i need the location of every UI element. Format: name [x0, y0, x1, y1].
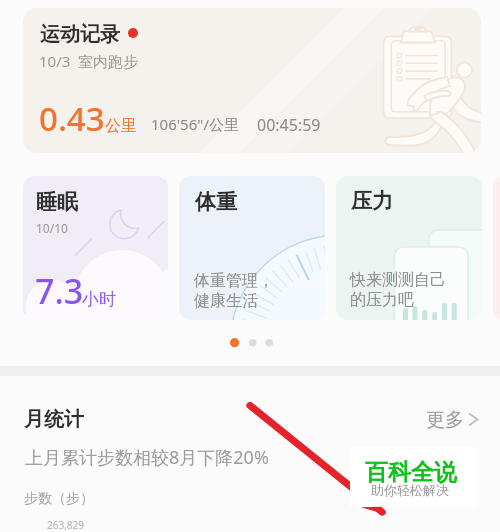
- staticText: 体重: [195, 189, 237, 215]
- staticText: 睡眠: [36, 189, 78, 215]
- staticText: 体重管理， 健康生活: [194, 271, 274, 311]
- staticText: 更多: [426, 408, 464, 432]
- staticText: 步数（步）: [24, 490, 94, 508]
- staticText: 10/3 室内跑步: [39, 51, 139, 71]
- staticText: 00:45:59: [257, 114, 321, 136]
- button[interactable]: 睡眠: [23, 176, 168, 320]
- other: 更多: [468, 412, 479, 427]
- staticText: 0.43: [39, 96, 105, 141]
- button[interactable]: [0, 396, 500, 446]
- staticText: 106'56"/公里: [151, 114, 239, 134]
- staticText: 小时: [82, 289, 116, 310]
- button[interactable]: 体重: [179, 176, 325, 320]
- staticText: 上月累计步数相较8月下降20%: [25, 445, 269, 470]
- staticText: 263,829: [47, 518, 84, 532]
- staticText: 7.3: [35, 268, 84, 314]
- staticText: 公里: [105, 116, 137, 136]
- button[interactable]: 压力: [336, 176, 482, 320]
- staticText: 月统计: [24, 407, 84, 432]
- staticText: 运动记录: [40, 22, 120, 47]
- staticText: 快来测测自己 的压力吧: [350, 270, 446, 310]
- button[interactable]: 运动记录: [23, 8, 481, 153]
- staticText: 10/10: [36, 220, 68, 236]
- staticText: 压力: [351, 188, 393, 214]
- staticText: 助你轻松解决: [371, 482, 449, 498]
- staticText: 百科全说: [365, 458, 457, 487]
